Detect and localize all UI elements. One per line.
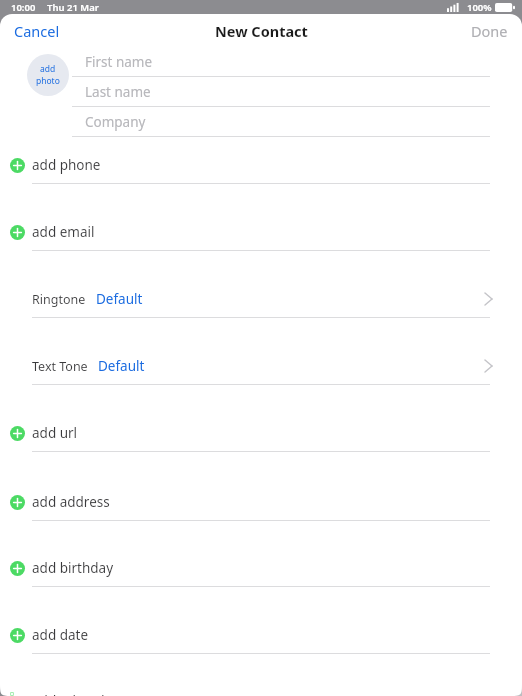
staticText: add email: [32, 223, 95, 241]
staticText: Default: [96, 290, 143, 308]
staticText: 100%: [467, 1, 492, 14]
button[interactable]: add url: [0, 423, 522, 452]
staticText: add url: [32, 424, 78, 442]
staticText: Done: [471, 21, 508, 41]
button[interactable]: Last name: [0, 77, 522, 107]
staticText: 10:00: [11, 1, 36, 14]
staticText: Company: [85, 113, 146, 131]
staticText: First name: [85, 53, 153, 71]
button[interactable]: First name: [0, 47, 522, 77]
staticText: add related name: [32, 692, 145, 696]
staticText: Ringtone: [32, 291, 86, 308]
staticText: Text Tone: [32, 358, 88, 375]
staticText: add phone: [32, 156, 101, 174]
staticText: add birthday: [32, 559, 114, 577]
button[interactable]: Done: [461, 17, 522, 45]
staticText: add: [40, 63, 56, 75]
staticText: Default: [98, 357, 145, 375]
staticText: add address: [32, 493, 110, 511]
button[interactable]: add date: [0, 625, 522, 654]
button[interactable]: add email: [0, 222, 522, 251]
button[interactable]: Ringtone: [0, 289, 522, 318]
button[interactable]: Company: [0, 107, 522, 137]
staticText: New Contact: [215, 21, 308, 41]
staticText: Thu 21 Mar: [47, 1, 99, 14]
button[interactable]: add address: [0, 492, 522, 521]
button[interactable]: add related name: [0, 692, 522, 696]
button[interactable]: Cancel: [0, 17, 70, 45]
staticText: add date: [32, 626, 89, 644]
staticText: Last name: [85, 83, 151, 101]
button[interactable]: add phone: [0, 155, 522, 184]
staticText: photo: [36, 75, 60, 87]
button[interactable]: Text Tone: [0, 356, 522, 385]
staticText: Cancel: [14, 21, 60, 41]
button[interactable]: add birthday: [0, 558, 522, 587]
button[interactable]: add: [27, 54, 69, 96]
